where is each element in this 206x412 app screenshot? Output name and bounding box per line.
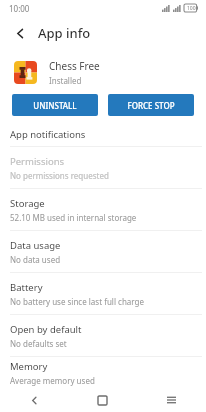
staticText: Average memory used (10, 375, 95, 386)
staticText: Open by default (10, 323, 82, 336)
button[interactable]: Back (6, 19, 34, 47)
button[interactable]: Storage (0, 189, 206, 230)
button[interactable]: Permissions (0, 147, 206, 188)
button[interactable]: Battery (0, 273, 206, 314)
button[interactable]: Back (0, 388, 68, 412)
button[interactable]: UNINSTALL (12, 94, 98, 116)
staticText: FORCE STOP (127, 100, 175, 111)
staticText: 10:00 (9, 3, 30, 14)
staticText: No battery use since last full charge (10, 296, 144, 307)
staticText: Battery (10, 281, 43, 294)
staticText: No permissions requested (10, 170, 109, 181)
button[interactable]: Chess Free (0, 50, 206, 94)
button[interactable]: FORCE STOP (108, 94, 194, 116)
staticText: Installed (49, 75, 82, 86)
staticText: App notifications (10, 128, 86, 141)
staticText: 100 (187, 5, 196, 12)
button[interactable]: Recents (137, 388, 206, 412)
button[interactable]: Memory (0, 357, 206, 388)
button[interactable]: Data usage (0, 231, 206, 272)
staticText: Memory (10, 360, 48, 373)
button[interactable]: App notifications (0, 123, 206, 146)
button[interactable]: Home (68, 388, 137, 412)
staticText: No data used (10, 254, 61, 265)
staticText: Permissions (10, 155, 65, 168)
staticText: Data usage (10, 239, 61, 252)
staticText: 52.10 MB used in internal storage (10, 212, 137, 223)
staticText: App info (38, 24, 91, 42)
staticText: Chess Free (49, 59, 100, 73)
staticText: No defaults set (10, 338, 67, 349)
staticText: UNINSTALL (33, 100, 77, 111)
button[interactable]: Open by default (0, 315, 206, 356)
staticText: Storage (10, 197, 45, 210)
